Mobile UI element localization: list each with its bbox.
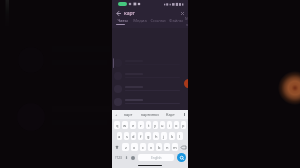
button[interactable]: Муз [185,18,188,28]
staticText: Карт [166,112,175,117]
button[interactable]: Comma [123,152,130,163]
staticText: q [116,123,119,128]
button[interactable]: Clear search [178,9,186,17]
button[interactable] [112,95,188,108]
button[interactable]: t [146,121,151,129]
button[interactable]: Файлы [167,18,185,28]
staticText: ?123 [115,156,122,160]
button[interactable]: e [130,121,136,129]
staticText: Муз [185,16,188,26]
button[interactable]: b [156,143,162,151]
staticText: z [125,145,127,150]
staticText: x [133,145,136,150]
button[interactable]: Search [177,153,186,162]
button[interactable]: v [148,143,154,151]
button[interactable]: y [153,121,158,129]
staticText: i [169,123,171,128]
button[interactable]: g [145,132,151,140]
button[interactable]: Space [138,154,174,161]
staticText: u [161,123,164,128]
button[interactable]: c [140,143,146,151]
staticText: English [151,156,162,160]
button[interactable]: u [160,121,165,129]
button[interactable]: a [117,132,122,140]
staticText: Ссылки [150,18,166,24]
button[interactable]: Emoji [130,152,136,163]
staticText: r [140,123,142,128]
button[interactable]: More options [183,110,186,119]
staticText: k [171,134,174,139]
button[interactable]: Карт [160,110,181,119]
button[interactable]: d [131,132,136,140]
staticText: w [123,123,127,128]
button[interactable]: x [131,143,138,151]
staticText: b [158,145,161,150]
button[interactable]: New chat [184,79,188,88]
button[interactable] [112,82,188,95]
button[interactable]: k [169,132,175,140]
staticText: c [142,145,144,150]
staticText: d [132,134,135,139]
staticText: Файлы [169,18,183,24]
button[interactable]: q [114,121,120,129]
staticText: карт [124,10,135,17]
staticText: p [182,123,185,128]
staticText: j [163,134,165,139]
staticText: f [140,134,142,139]
staticText: s [126,134,128,139]
button[interactable]: Ссылки [149,18,167,28]
staticText: o [175,123,178,128]
button[interactable] [112,108,188,121]
button[interactable]: z [122,143,129,151]
button[interactable]: Symbols [113,152,123,163]
button[interactable]: Backspace [179,143,188,151]
staticText: l [179,134,181,139]
button[interactable]: Медиа [131,18,149,28]
staticText: m [173,145,177,150]
button[interactable]: Чаты [113,18,131,28]
button[interactable]: i [167,121,172,129]
button[interactable]: j [161,132,167,140]
button[interactable]: карт [118,110,139,119]
button[interactable]: p [181,121,186,129]
button[interactable]: f [138,132,143,140]
staticText: картинки [141,112,159,117]
button[interactable]: Shift [112,143,121,151]
button[interactable]: n [164,143,170,151]
staticText: e [132,123,135,128]
button[interactable]: Back [114,9,122,17]
staticText: a [118,134,121,139]
button[interactable]: r [138,121,144,129]
button[interactable] [112,56,188,69]
staticText: n [166,145,169,150]
button[interactable]: картинки [139,110,160,119]
staticText: карт [124,112,133,117]
button[interactable]: s [124,132,129,140]
staticText: h [155,134,158,139]
button[interactable]: w [122,121,128,129]
button[interactable]: h [153,132,159,140]
button[interactable] [112,69,188,82]
button[interactable]: o [174,121,179,129]
staticText: g [147,134,150,139]
staticText: Чаты [117,18,128,24]
staticText: Медиа [133,18,147,24]
button[interactable]: m [172,143,178,151]
staticText: y [154,123,157,128]
staticText: t [148,123,150,128]
button[interactable]: l [177,132,183,140]
staticText: + [115,112,118,117]
staticText: v [150,145,153,150]
